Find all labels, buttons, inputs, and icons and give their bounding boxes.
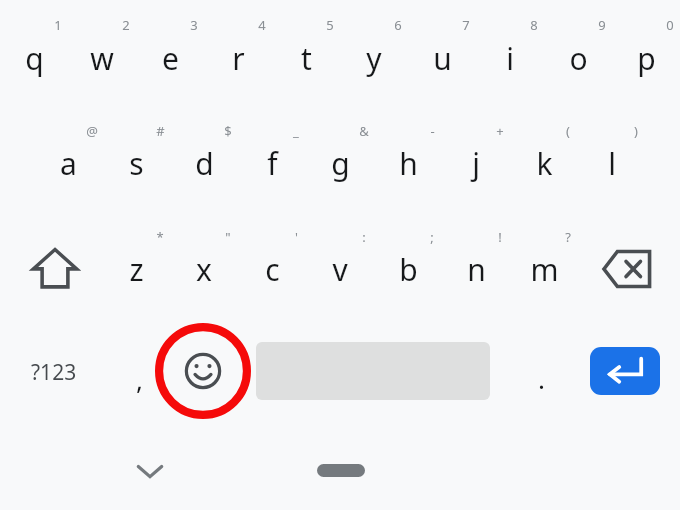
button[interactable] [0, 5, 68, 110]
staticText: 0 [666, 16, 674, 34]
staticText: j [472, 143, 480, 184]
staticText: m [530, 249, 559, 290]
button[interactable] [272, 5, 340, 110]
staticText: ) [634, 122, 638, 140]
staticText: 5 [326, 16, 334, 34]
button[interactable] [306, 110, 374, 215]
staticText: 3 [190, 16, 198, 34]
button[interactable] [578, 110, 646, 215]
staticText: $ [224, 122, 232, 140]
staticText: * [156, 228, 164, 246]
staticText: h [399, 143, 418, 184]
staticText: i [506, 38, 514, 79]
staticText: & [359, 122, 369, 140]
staticText: ; [430, 228, 434, 246]
button[interactable] [170, 218, 238, 318]
button[interactable] [612, 5, 680, 110]
button[interactable] [374, 110, 442, 215]
staticText: , [136, 362, 143, 397]
staticText: v [332, 249, 348, 290]
button[interactable] [442, 218, 510, 318]
button[interactable] [34, 110, 102, 215]
staticText: t [301, 38, 312, 79]
button[interactable] [109, 326, 169, 418]
staticText: r [232, 38, 245, 79]
staticText: p [637, 38, 656, 79]
button[interactable] [340, 5, 408, 110]
button[interactable] [136, 5, 204, 110]
staticText: x [196, 249, 212, 290]
button[interactable]: ?123 [6, 326, 102, 418]
staticText: 4 [258, 16, 266, 34]
staticText: 2 [122, 16, 130, 34]
staticText: z [129, 249, 144, 290]
staticText: e [162, 38, 179, 79]
button[interactable] [238, 218, 306, 318]
staticText: 9 [598, 16, 606, 34]
staticText: b [399, 249, 418, 290]
button[interactable] [238, 110, 306, 215]
button[interactable] [544, 5, 612, 110]
staticText: o [569, 38, 588, 79]
staticText: # [156, 122, 165, 140]
staticText: ! [498, 228, 502, 246]
staticText: k [536, 143, 553, 184]
button[interactable] [102, 110, 170, 215]
button[interactable]: Home [317, 464, 365, 477]
staticText: " [225, 228, 231, 246]
staticText: ?123 [31, 358, 77, 387]
staticText: s [129, 143, 144, 184]
button[interactable] [510, 218, 578, 318]
staticText: n [467, 249, 486, 290]
button[interactable] [510, 110, 578, 215]
button[interactable]: Backspace [582, 219, 672, 319]
staticText: ( [566, 122, 570, 140]
staticText: y [366, 38, 382, 79]
staticText: + [496, 122, 504, 140]
button[interactable]: Emoji [170, 325, 236, 417]
button[interactable] [170, 110, 238, 215]
button[interactable] [374, 218, 442, 318]
button[interactable]: Enter [590, 347, 660, 395]
staticText: 6 [394, 16, 402, 34]
staticText: . [538, 361, 545, 396]
staticText: 7 [462, 16, 470, 34]
staticText: a [60, 143, 77, 184]
button[interactable] [476, 5, 544, 110]
staticText: g [331, 143, 350, 184]
button[interactable] [68, 5, 136, 110]
staticText: f [267, 143, 278, 184]
staticText: @ [86, 122, 98, 140]
staticText: _ [293, 122, 299, 140]
staticText: u [433, 38, 452, 79]
button[interactable]: Hide keyboard [124, 448, 176, 494]
staticText: w [90, 38, 114, 79]
button[interactable] [204, 5, 272, 110]
button[interactable] [408, 5, 476, 110]
button[interactable] [442, 110, 510, 215]
staticText: - [430, 122, 435, 140]
staticText: c [265, 249, 280, 290]
staticText: ' [295, 228, 298, 246]
staticText: 8 [530, 16, 538, 34]
staticText: 1 [54, 16, 62, 34]
staticText: : [362, 228, 366, 246]
staticText: ? [565, 228, 571, 246]
staticText: l [608, 143, 616, 184]
button[interactable]: Shift [10, 218, 100, 318]
staticText: d [195, 143, 214, 184]
staticText: q [25, 38, 44, 79]
button[interactable] [102, 218, 170, 318]
button[interactable] [511, 326, 571, 418]
button[interactable] [306, 218, 374, 318]
